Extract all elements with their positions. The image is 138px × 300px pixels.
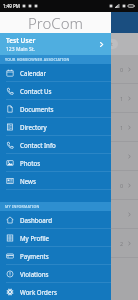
button[interactable]: Contact Info	[0, 136, 111, 153]
staticText: Directory	[20, 123, 47, 131]
staticText: Dashboard	[20, 216, 53, 224]
staticText: 1:49 PM	[3, 3, 20, 9]
button[interactable]: News	[0, 172, 111, 189]
button[interactable]: Test User	[0, 33, 111, 55]
button[interactable]: My Profile	[0, 229, 111, 246]
staticText: 2	[120, 240, 124, 247]
staticText: ProCom	[28, 13, 83, 33]
staticText: Test User	[6, 36, 36, 45]
staticText: Photos	[20, 159, 41, 167]
staticText: Work Orders	[20, 288, 57, 296]
button[interactable]: Directory	[0, 118, 111, 135]
staticText: Contact Us	[20, 87, 52, 95]
button[interactable]: Payments	[0, 247, 111, 264]
staticText: News	[20, 177, 36, 185]
button[interactable]: Dashboard	[0, 211, 111, 228]
staticText: 0	[120, 182, 124, 189]
staticText: Payments	[20, 252, 49, 260]
staticText: MY INFORMATION	[5, 204, 40, 209]
staticText: My Profile	[20, 234, 50, 242]
button[interactable]: Documents	[0, 100, 111, 117]
button[interactable]: Violations	[0, 265, 111, 282]
button[interactable]: Contact Us	[0, 82, 111, 99]
staticText: Violations	[20, 270, 49, 278]
button[interactable]: Work Orders	[0, 283, 111, 300]
staticText: Contact Info	[20, 141, 56, 149]
staticText: Documents	[20, 105, 54, 113]
staticText: YOUR HOMEOWNER ASSOCIATION	[5, 57, 70, 62]
staticText: 0	[120, 66, 124, 73]
button[interactable]: Photos	[0, 154, 111, 171]
staticText: 123 Main St.	[6, 46, 35, 53]
staticText: 1	[120, 95, 124, 102]
staticText: Add Account	[86, 41, 113, 47]
button[interactable]: Calendar	[0, 64, 111, 81]
staticText: Calendar	[20, 69, 47, 77]
staticText: 1	[120, 124, 124, 131]
